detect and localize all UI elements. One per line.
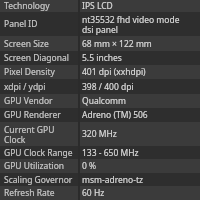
staticText: Adreno (TM) 506 <box>82 109 148 121</box>
staticText: GPU Vendor <box>4 95 53 107</box>
staticText: Panel ID <box>4 18 38 30</box>
button[interactable]: Pixel Density <box>0 65 200 79</box>
staticText: 398 / 400 dpi <box>82 81 134 93</box>
button[interactable]: Screen Diagonal <box>0 51 200 65</box>
button[interactable]: GPU Renderer <box>0 108 200 122</box>
button[interactable]: Technology <box>0 0 200 12</box>
staticText: 60 Hz <box>82 187 105 199</box>
staticText: Screen Diagonal <box>4 52 69 64</box>
staticText: 401 dpi (xxhdpi) <box>82 66 146 78</box>
staticText: 320 MHz <box>82 128 117 140</box>
staticText: GPU Renderer <box>4 109 61 121</box>
staticText: nt35532 fhd video mode dsi panel <box>82 14 180 35</box>
staticText: Technology <box>4 0 50 12</box>
staticText: 68 mm × 122 mm <box>82 38 152 50</box>
staticText: Current GPU Clock <box>4 124 55 145</box>
staticText: Refresh Rate <box>4 187 55 199</box>
staticText: 5.5 inches <box>82 52 122 64</box>
button[interactable]: Current GPU Clock <box>0 122 200 146</box>
button[interactable]: xdpi / ydpi <box>0 79 200 94</box>
button[interactable]: Panel ID <box>0 12 200 36</box>
button[interactable]: Scaling Governor <box>0 173 200 186</box>
staticText: 0 % <box>82 160 97 172</box>
button[interactable]: GPU Vendor <box>0 94 200 108</box>
staticText: 133 - 650 MHz <box>82 147 139 159</box>
staticText: Scaling Governor <box>4 174 73 186</box>
staticText: xdpi / ydpi <box>4 81 46 93</box>
staticText: Pixel Density <box>4 66 55 78</box>
button[interactable]: Refresh Rate <box>0 186 200 200</box>
staticText: IPS LCD <box>82 0 113 12</box>
button[interactable]: Screen Size <box>0 36 200 51</box>
button[interactable]: GPU Clock Range <box>0 146 200 159</box>
button[interactable]: GPU Utilization <box>0 159 200 173</box>
staticText: Screen Size <box>4 38 49 50</box>
staticText: Qualcomm <box>82 95 126 107</box>
staticText: GPU Clock Range <box>4 147 73 159</box>
staticText: msm-adreno-tz <box>82 174 144 186</box>
staticText: GPU Utilization <box>4 160 65 172</box>
